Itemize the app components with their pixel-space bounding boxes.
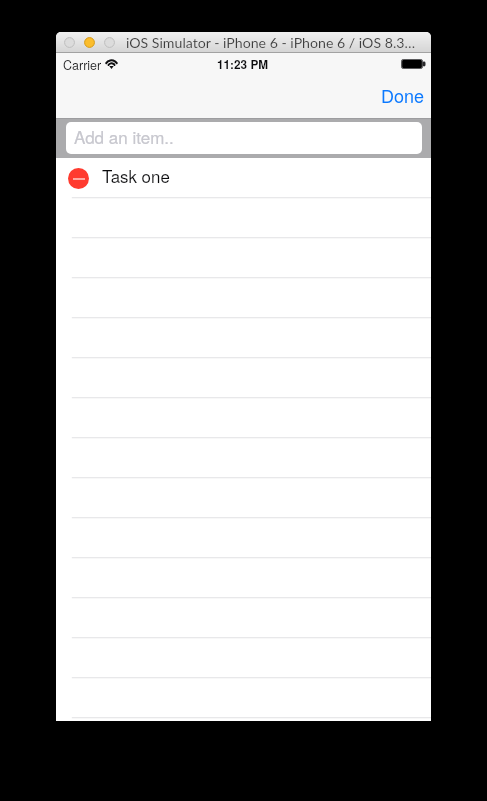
button[interactable]: Delete task — [68, 168, 89, 189]
button[interactable]: Add an item.. — [66, 122, 422, 154]
button[interactable]: Done — [373, 76, 431, 114]
staticText: iOS Simulator - iPhone 6 - iPhone 6 / iO… — [126, 34, 416, 51]
button[interactable]: Delete task — [56, 158, 431, 198]
staticText: 11:23 PM — [217, 56, 269, 73]
staticText: Add an item.. — [74, 124, 174, 148]
staticText: Task one — [102, 164, 170, 188]
staticText: Carrier — [63, 56, 102, 74]
staticText: Done — [381, 82, 425, 108]
